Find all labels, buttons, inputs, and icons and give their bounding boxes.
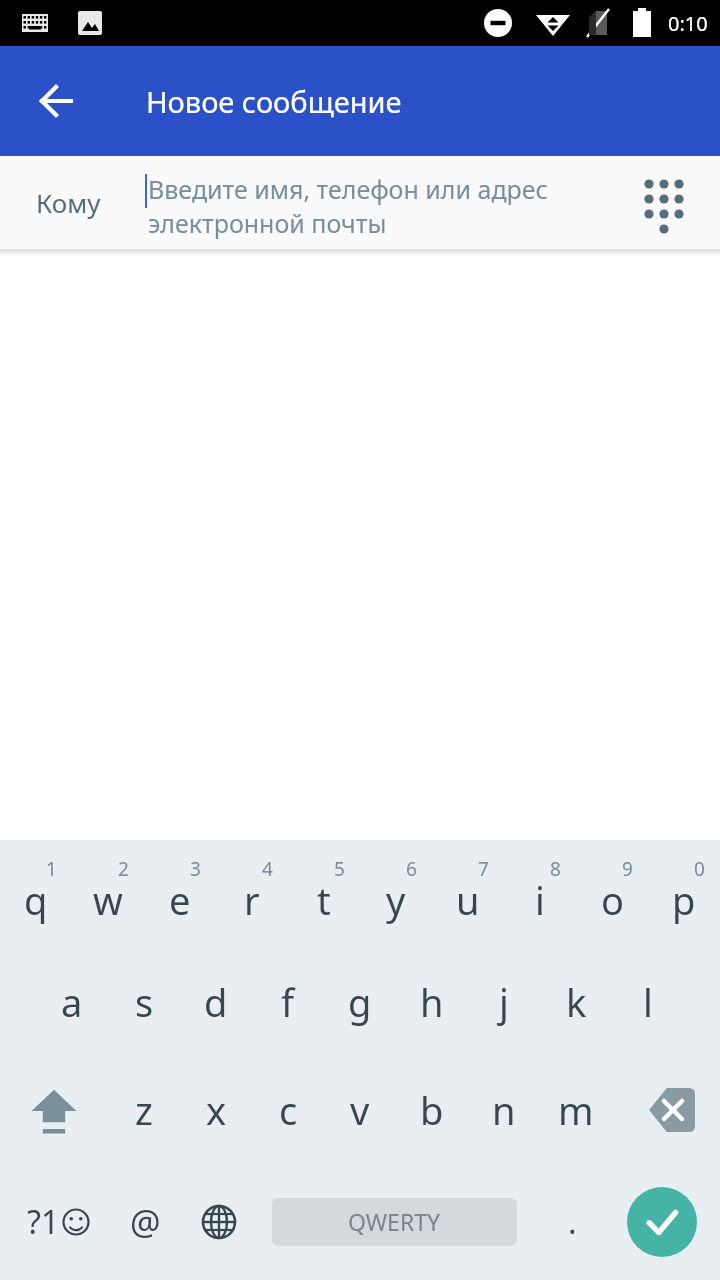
button[interactable]: c <box>252 1056 324 1164</box>
staticText: b <box>420 1084 444 1136</box>
button[interactable]: 3 <box>144 840 216 948</box>
button[interactable]: Клавиатура набора номера <box>634 173 694 233</box>
staticText: p <box>672 874 696 926</box>
button[interactable]: Символы и эмодзи <box>4 1172 112 1272</box>
staticText: e <box>169 874 191 926</box>
button[interactable]: d <box>180 948 252 1056</box>
staticText: a <box>61 976 83 1028</box>
staticText: 6 <box>406 856 417 882</box>
staticText: i <box>535 874 545 926</box>
staticText: l <box>643 976 653 1028</box>
staticText: Новое сообщение <box>146 82 402 121</box>
staticText: u <box>456 874 480 926</box>
staticText: . <box>568 1200 577 1244</box>
staticText: x <box>206 1084 227 1136</box>
button[interactable]: m <box>540 1056 612 1164</box>
staticText: 8 <box>550 856 561 882</box>
staticText: 0:10 <box>668 10 708 37</box>
button[interactable]: 6 <box>360 840 432 948</box>
button[interactable]: s <box>108 948 180 1056</box>
staticText: z <box>135 1084 153 1136</box>
staticText: c <box>279 1084 298 1136</box>
staticText: j <box>499 976 509 1028</box>
staticText: Введите имя, телефон или адрес электронн… <box>148 172 548 240</box>
button[interactable]: b <box>396 1056 468 1164</box>
button[interactable]: Готово <box>627 1187 697 1257</box>
button[interactable]: Удалить <box>612 1056 720 1164</box>
staticText: QWERTY <box>348 1206 441 1237</box>
button[interactable]: QWERTY <box>272 1198 517 1246</box>
button[interactable]: 1 <box>0 840 72 948</box>
button[interactable]: 2 <box>72 840 144 948</box>
button[interactable]: Кому <box>0 156 720 249</box>
button[interactable]: 5 <box>288 840 360 948</box>
staticText: 3 <box>190 856 201 882</box>
staticText: g <box>348 976 372 1028</box>
staticText: k <box>566 976 587 1028</box>
staticText: 9 <box>622 856 633 882</box>
button[interactable]: Верхний регистр <box>0 1056 108 1164</box>
staticText: 5 <box>334 856 345 882</box>
button[interactable]: z <box>108 1056 180 1164</box>
staticText: w <box>93 874 123 926</box>
button[interactable]: 0 <box>648 840 720 948</box>
staticText: m <box>558 1084 594 1136</box>
staticText: s <box>135 976 154 1028</box>
staticText: v <box>350 1084 370 1136</box>
button[interactable]: Назад <box>22 67 90 135</box>
staticText: h <box>420 976 444 1028</box>
button[interactable]: 4 <box>216 840 288 948</box>
button[interactable]: n <box>468 1056 540 1164</box>
button[interactable]: x <box>180 1056 252 1164</box>
staticText: n <box>492 1084 516 1136</box>
staticText: r <box>244 874 260 926</box>
staticText: Кому <box>36 185 101 220</box>
button[interactable]: k <box>540 948 612 1056</box>
staticText: y <box>386 874 406 926</box>
staticText: 2 <box>118 856 129 882</box>
button[interactable]: . <box>536 1172 608 1272</box>
staticText: 7 <box>478 856 489 882</box>
staticText: 4 <box>262 856 273 882</box>
staticText: d <box>204 976 228 1028</box>
button[interactable]: a <box>36 948 108 1056</box>
button[interactable]: 7 <box>432 840 504 948</box>
button[interactable]: Сменить язык <box>182 1172 256 1272</box>
button[interactable]: v <box>324 1056 396 1164</box>
button[interactable]: @ <box>108 1172 182 1272</box>
staticText: ?1 <box>27 1200 60 1244</box>
button[interactable]: j <box>468 948 540 1056</box>
button[interactable]: f <box>252 948 324 1056</box>
button[interactable]: 9 <box>576 840 648 948</box>
staticText: f <box>281 976 295 1028</box>
staticText: 1 <box>46 856 57 882</box>
staticText: @ <box>130 1199 161 1245</box>
staticText: 0 <box>694 856 705 882</box>
staticText: o <box>601 874 624 926</box>
staticText: t <box>317 874 331 926</box>
staticText: q <box>24 874 48 926</box>
button[interactable]: 8 <box>504 840 576 948</box>
button[interactable]: h <box>396 948 468 1056</box>
button[interactable]: g <box>324 948 396 1056</box>
button[interactable]: l <box>612 948 684 1056</box>
